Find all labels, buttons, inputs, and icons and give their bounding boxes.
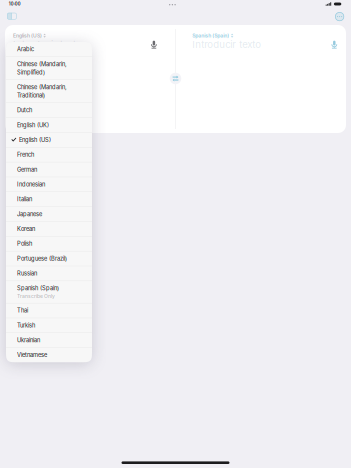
button[interactable]: English (US) <box>13 33 46 39</box>
button[interactable]: Dutch <box>6 103 92 117</box>
button[interactable]: Chinese (Mandarin, <box>6 57 92 79</box>
button[interactable]: Swap languages <box>170 73 181 84</box>
button[interactable]: Turkish <box>6 318 92 332</box>
button[interactable]: Polish <box>6 236 92 251</box>
staticText: Polish <box>17 240 32 247</box>
button[interactable]: Ukrainian <box>6 333 92 347</box>
button[interactable]: Chinese (Mandarin, <box>6 80 92 103</box>
staticText: English (US) <box>13 33 42 39</box>
staticText: Transcribe Only <box>17 293 55 299</box>
button[interactable]: French <box>6 147 92 162</box>
button[interactable]: German <box>6 162 92 177</box>
staticText: Arabic <box>17 46 34 53</box>
button[interactable]: Russian <box>6 266 92 281</box>
staticText: Spanish (Spain) <box>17 285 59 292</box>
staticText: English (UK) <box>17 122 49 128</box>
staticText: Spanish (Spain) <box>192 33 229 39</box>
staticText: French <box>17 151 34 158</box>
staticText: Indonesian <box>17 181 45 188</box>
staticText: Russian <box>17 270 37 277</box>
button[interactable]: Thai <box>6 303 92 318</box>
staticText: 10:00 <box>9 1 21 7</box>
staticText: Dutch <box>17 107 32 114</box>
button[interactable]: English (UK) <box>6 118 92 132</box>
button[interactable]: Spanish (Spain) <box>6 281 92 303</box>
button[interactable]: Spanish (Spain) <box>192 33 233 39</box>
button[interactable]: Italian <box>6 192 92 206</box>
button[interactable]: Japanese <box>6 207 92 221</box>
button[interactable]: Portuguese (Brazil) <box>6 251 92 266</box>
button[interactable]: English (US) <box>6 133 92 147</box>
staticText: Chinese (Mandarin, <box>17 61 67 67</box>
staticText: Turkish <box>17 322 35 329</box>
staticText: Chinese (Mandarin, <box>17 84 67 91</box>
staticText: Ukrainian <box>17 337 40 344</box>
staticText: Traditional) <box>17 92 45 99</box>
staticText: Thai <box>17 307 28 314</box>
button[interactable]: Show Sidebar <box>5 10 19 22</box>
staticText: Portuguese (Brazil) <box>17 255 67 262</box>
staticText: German <box>17 166 37 173</box>
button[interactable]: Indonesian <box>6 177 92 192</box>
staticText: English (US) <box>19 136 51 143</box>
button[interactable]: Korean <box>6 222 92 236</box>
button[interactable]: Vietnamese <box>6 348 92 362</box>
button[interactable]: Dictate Spanish <box>328 37 340 52</box>
button[interactable]: Arabic <box>6 42 92 56</box>
button[interactable]: Dictate English <box>148 37 160 52</box>
button[interactable]: More options <box>333 10 346 23</box>
staticText: Italian <box>17 196 32 203</box>
staticText: Introducir texto <box>13 39 82 50</box>
staticText: Simplified) <box>17 69 45 76</box>
staticText: Japanese <box>17 211 42 217</box>
staticText: Vietnamese <box>17 352 47 358</box>
staticText: Introducir texto <box>192 39 261 50</box>
staticText: Korean <box>17 225 35 232</box>
